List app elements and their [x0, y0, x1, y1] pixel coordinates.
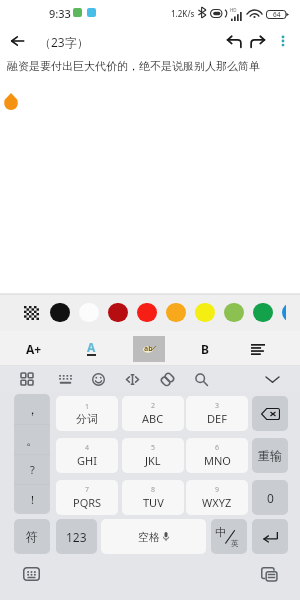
staticText: HD	[230, 7, 237, 13]
staticText: 融资是要付出巨大代价的，绝不是说服别人那么简单	[7, 59, 260, 73]
staticText: 英	[231, 539, 239, 548]
staticText: 2	[151, 401, 156, 411]
button[interactable]: format1	[75, 336, 107, 362]
staticText: WXYZ	[202, 495, 232, 510]
staticText: DEF	[207, 411, 227, 426]
button[interactable]: Color 9	[278, 302, 286, 323]
staticText: 空格	[138, 530, 160, 544]
staticText: ab	[144, 344, 153, 354]
button[interactable]: PQRS	[56, 480, 118, 515]
button[interactable]: Color 6	[191, 302, 219, 323]
staticText: 中	[215, 525, 226, 539]
button[interactable]: grid	[14, 366, 40, 392]
button[interactable]: kb	[52, 366, 78, 392]
button[interactable]: format4	[242, 336, 274, 362]
staticText: MNO	[204, 453, 231, 468]
button[interactable]: 分词	[56, 396, 118, 431]
staticText: ABC	[142, 411, 164, 426]
staticText: 6	[215, 443, 220, 453]
button[interactable]: WXYZ	[186, 480, 248, 515]
staticText: A+	[26, 341, 42, 357]
staticText: TUV	[143, 495, 164, 510]
button[interactable]: cursor	[119, 366, 145, 392]
button[interactable]: JKL	[122, 438, 184, 473]
staticText: 。	[26, 432, 39, 448]
button[interactable]: Color 7	[220, 302, 248, 323]
staticText: 7	[85, 485, 90, 495]
staticText: 9:33	[49, 6, 71, 21]
staticText: 64	[273, 10, 281, 19]
button[interactable]: TUV	[122, 480, 184, 515]
button[interactable]: Symbols	[14, 519, 50, 554]
button[interactable]: Space	[101, 519, 206, 554]
button[interactable]: 。	[14, 425, 50, 454]
button[interactable]: !	[14, 485, 50, 514]
button[interactable]: format2	[133, 336, 165, 362]
staticText: ，	[26, 401, 39, 417]
staticText: !	[31, 492, 34, 507]
button[interactable]: Undo	[220, 26, 248, 56]
button[interactable]: ?	[14, 455, 50, 484]
button[interactable]: 0	[252, 480, 288, 515]
button[interactable]: Redo	[244, 26, 272, 56]
button[interactable]: ABC	[122, 396, 184, 431]
staticText: B	[201, 341, 209, 357]
staticText: （23字）	[39, 34, 89, 50]
button[interactable]: 重输	[252, 438, 288, 473]
button[interactable]: DEF	[186, 396, 248, 431]
staticText: 重输	[258, 448, 282, 463]
button[interactable]: Enter	[252, 519, 288, 554]
button[interactable]: Color 5	[162, 302, 190, 323]
button[interactable]: Hide keyboard	[259, 366, 285, 392]
button[interactable]: Color 3	[104, 302, 132, 323]
button[interactable]: 123	[56, 519, 97, 554]
staticText: 5	[151, 443, 156, 453]
button[interactable]: search	[188, 366, 214, 392]
staticText: PQRS	[73, 495, 102, 510]
button[interactable]: format0	[18, 336, 50, 362]
button[interactable]: format3	[189, 336, 221, 362]
button[interactable]: Switch keyboard	[18, 564, 44, 584]
staticText: 3	[215, 401, 220, 411]
staticText: 9	[215, 485, 220, 495]
button[interactable]: GHI	[56, 438, 118, 473]
staticText: GHI	[77, 453, 97, 468]
staticText: JKL	[145, 453, 161, 468]
button[interactable]: Color 1	[46, 302, 74, 323]
staticText: 8	[151, 485, 156, 495]
staticText: 1	[85, 402, 90, 412]
button[interactable]: emoji	[85, 366, 111, 392]
button[interactable]: Color 0	[17, 302, 45, 323]
staticText: 4	[85, 443, 90, 453]
button[interactable]: Clipboard	[256, 564, 282, 584]
button[interactable]: ，	[14, 394, 50, 424]
staticText: 0	[267, 490, 274, 506]
button[interactable]: del	[252, 396, 288, 431]
button[interactable]: Color 8	[249, 302, 277, 323]
button[interactable]: Back	[3, 26, 33, 56]
staticText: 分词	[76, 412, 98, 426]
button[interactable]: Color 4	[133, 302, 161, 323]
button[interactable]: Switch language	[211, 519, 247, 554]
staticText: A	[87, 339, 96, 355]
staticText: 符	[26, 529, 38, 544]
button[interactable]: More options	[270, 26, 296, 56]
staticText: 1.2K/s	[171, 8, 195, 19]
button[interactable]: link	[154, 366, 180, 392]
staticText: 123	[66, 529, 87, 545]
button[interactable]: MNO	[186, 438, 248, 473]
staticText: ?	[30, 462, 35, 477]
button[interactable]: Color 2	[75, 302, 103, 323]
